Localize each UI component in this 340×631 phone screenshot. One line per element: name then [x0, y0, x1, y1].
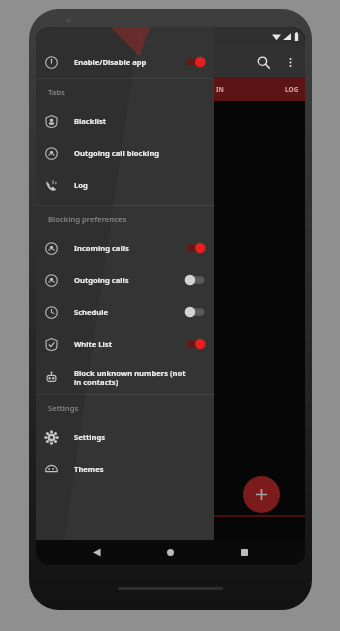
button[interactable]: Blacklist — [36, 105, 214, 137]
staticText: Settings — [48, 403, 79, 414]
staticText: Log — [74, 180, 88, 190]
staticText: White List — [74, 339, 112, 349]
button[interactable]: Outgoing calls — [36, 264, 214, 296]
button[interactable]: Search — [248, 47, 278, 77]
staticText: IN — [216, 85, 224, 94]
button[interactable]: Add blocked number — [243, 476, 280, 513]
staticText: Incoming calls — [74, 243, 129, 253]
staticText: Blocking preferences — [48, 214, 127, 225]
button[interactable]: Log — [36, 169, 214, 201]
button[interactable]: Settings — [36, 421, 214, 453]
button[interactable]: White List — [36, 328, 214, 360]
staticText: Themes — [74, 464, 104, 474]
button[interactable]: Enable/Disable app — [36, 46, 214, 78]
button[interactable]: Navigate up — [36, 46, 67, 77]
button[interactable]: Themes — [36, 453, 214, 485]
staticText: Outgoing calls — [74, 275, 129, 285]
staticText: Outgoing call blocking — [74, 148, 160, 158]
button[interactable]: Home — [158, 540, 183, 565]
staticText: Tabs — [48, 87, 65, 98]
staticText: Settings — [74, 432, 106, 442]
staticText: Block unknown numbers (not in contacts) — [74, 368, 186, 387]
button[interactable]: Block unknown numbers (not in contacts) — [36, 360, 214, 394]
staticText: Enable/Disable app — [74, 57, 147, 67]
button[interactable]: Back — [85, 540, 110, 565]
staticText: LOG — [285, 85, 299, 94]
button[interactable]: Recent apps — [232, 540, 257, 565]
button[interactable]: Outgoing call blocking — [36, 137, 214, 169]
button[interactable]: More options — [278, 50, 302, 74]
staticText: Schedule — [74, 307, 109, 317]
staticText: Blacklist — [74, 116, 107, 126]
button[interactable]: Incoming calls — [36, 232, 214, 264]
staticText: Call Blocker — [69, 54, 134, 70]
button[interactable]: Schedule — [36, 296, 214, 328]
